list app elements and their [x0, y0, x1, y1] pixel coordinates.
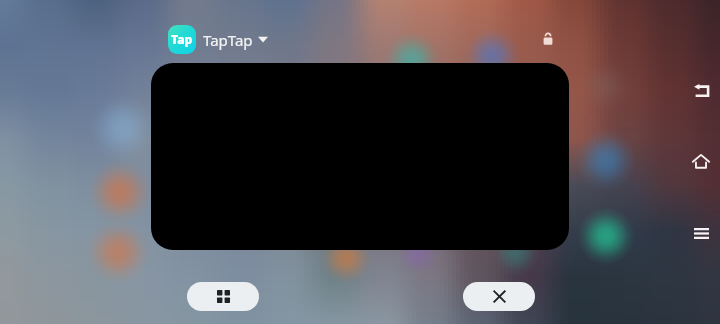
staticText: TapTap — [203, 30, 253, 50]
button[interactable]: Home — [683, 143, 719, 179]
button[interactable]: Tap — [168, 25, 263, 54]
button[interactable]: Locked — [540, 31, 556, 47]
button[interactable] — [151, 63, 569, 250]
button[interactable]: Close — [463, 282, 535, 311]
button[interactable]: Recent apps — [683, 215, 719, 251]
button[interactable]: Split screen — [187, 282, 259, 311]
staticText: Tap — [171, 31, 193, 47]
button[interactable]: Back — [684, 72, 720, 108]
